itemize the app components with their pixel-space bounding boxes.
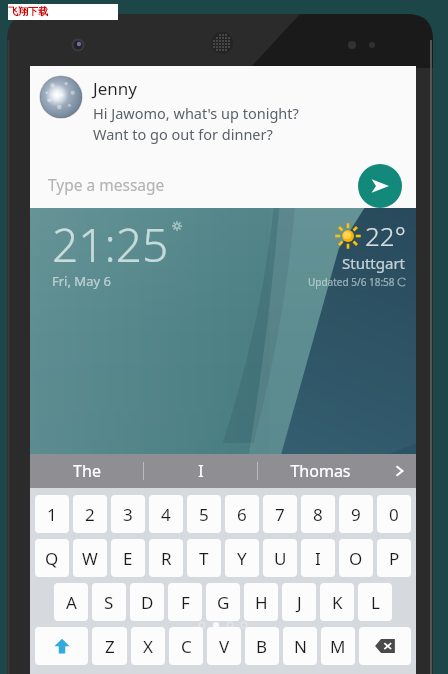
- button[interactable]: P: [377, 539, 411, 577]
- staticText: 5: [199, 503, 209, 526]
- staticText: U: [274, 547, 287, 570]
- staticText: Q: [45, 547, 59, 570]
- button[interactable]: J: [282, 583, 316, 621]
- button[interactable]: 0: [377, 495, 411, 533]
- button[interactable]: Shift: [35, 627, 88, 665]
- button[interactable]: H: [244, 583, 278, 621]
- button[interactable]: 2: [73, 495, 107, 533]
- button[interactable]: 5: [187, 495, 221, 533]
- button[interactable]: Type a message: [30, 162, 339, 206]
- button[interactable]: C: [169, 627, 203, 665]
- button[interactable]: K: [320, 583, 354, 621]
- button[interactable]: T: [187, 539, 221, 577]
- staticText: 9: [351, 503, 361, 526]
- button[interactable]: Thomas: [258, 454, 382, 488]
- button[interactable]: 21:25: [52, 213, 182, 294]
- staticText: V: [219, 635, 230, 658]
- staticText: R: [161, 547, 172, 570]
- staticText: Updated 5/6 18:58: [308, 275, 395, 289]
- staticText: A: [66, 591, 77, 614]
- button[interactable]: Z: [92, 627, 127, 665]
- button[interactable]: 1: [35, 495, 69, 533]
- staticText: C: [181, 635, 192, 658]
- button[interactable]: Send message: [358, 164, 402, 208]
- button[interactable]: 6: [225, 495, 259, 533]
- button[interactable]: 4: [149, 495, 183, 533]
- staticText: 7: [275, 503, 285, 526]
- button[interactable]: A: [54, 583, 88, 621]
- staticText: 8: [313, 503, 323, 526]
- button[interactable]: D: [130, 583, 164, 621]
- button[interactable]: 22°: [308, 218, 406, 289]
- button[interactable]: I: [144, 454, 257, 488]
- staticText: M: [330, 635, 346, 658]
- button[interactable]: Q: [35, 539, 69, 577]
- button[interactable]: E: [111, 539, 145, 577]
- button[interactable]: I: [301, 539, 335, 577]
- staticText: 2: [85, 503, 95, 526]
- button[interactable]: S: [92, 583, 126, 621]
- staticText: E: [123, 547, 133, 570]
- staticText: Jenny: [93, 77, 137, 100]
- button[interactable]: W: [73, 539, 107, 577]
- staticText: Want to go out for dinner?: [93, 124, 273, 144]
- staticText: P: [389, 547, 400, 570]
- staticText: L: [371, 591, 380, 614]
- staticText: S: [104, 591, 114, 614]
- button[interactable]: F: [168, 583, 202, 621]
- staticText: Stuttgart: [342, 253, 406, 273]
- staticText: Z: [105, 635, 115, 658]
- staticText: I: [315, 547, 321, 570]
- staticText: 6: [237, 503, 247, 526]
- staticText: I: [198, 460, 204, 482]
- button[interactable]: O: [339, 539, 373, 577]
- staticText: J: [297, 591, 302, 614]
- staticText: F: [181, 591, 190, 614]
- staticText: H: [255, 591, 268, 614]
- staticText: Hi Jawomo, what's up tonight?: [93, 103, 299, 123]
- button[interactable]: R: [149, 539, 183, 577]
- staticText: 4: [161, 503, 171, 526]
- button[interactable]: More suggestions: [382, 454, 416, 488]
- staticText: Y: [237, 547, 247, 570]
- button[interactable]: N: [283, 627, 317, 665]
- button[interactable]: Y: [225, 539, 259, 577]
- staticText: 0: [389, 503, 399, 526]
- button[interactable]: Backspace: [359, 627, 411, 665]
- button[interactable]: B: [245, 627, 279, 665]
- staticText: G: [217, 591, 230, 614]
- staticText: X: [143, 635, 153, 658]
- staticText: 飞翔下载 www.FXXZ.com: [8, 4, 118, 20]
- staticText: Fri, May 6: [52, 272, 111, 290]
- staticText: K: [332, 591, 343, 614]
- staticText: T: [199, 547, 209, 570]
- button[interactable]: U: [263, 539, 297, 577]
- staticText: D: [141, 591, 154, 614]
- button[interactable]: V: [207, 627, 241, 665]
- staticText: B: [256, 635, 268, 658]
- staticText: N: [294, 635, 307, 658]
- button[interactable]: L: [358, 583, 392, 621]
- staticText: Thomas: [290, 460, 351, 482]
- button[interactable]: 3: [111, 495, 145, 533]
- button[interactable]: G: [206, 583, 240, 621]
- staticText: 3: [123, 503, 133, 526]
- button[interactable]: X: [131, 627, 165, 665]
- button[interactable]: 8: [301, 495, 335, 533]
- button[interactable]: Jenny: [30, 66, 416, 160]
- button[interactable]: 9: [339, 495, 373, 533]
- button[interactable]: M: [321, 627, 355, 665]
- staticText: 22°: [365, 218, 406, 253]
- staticText: 1: [47, 503, 57, 526]
- staticText: W: [82, 547, 98, 570]
- staticText: Type a message: [48, 174, 165, 195]
- staticText: O: [349, 547, 363, 570]
- button[interactable]: 7: [263, 495, 297, 533]
- staticText: 21:25: [52, 213, 169, 276]
- button[interactable]: The: [30, 454, 143, 488]
- staticText: The: [73, 460, 101, 482]
